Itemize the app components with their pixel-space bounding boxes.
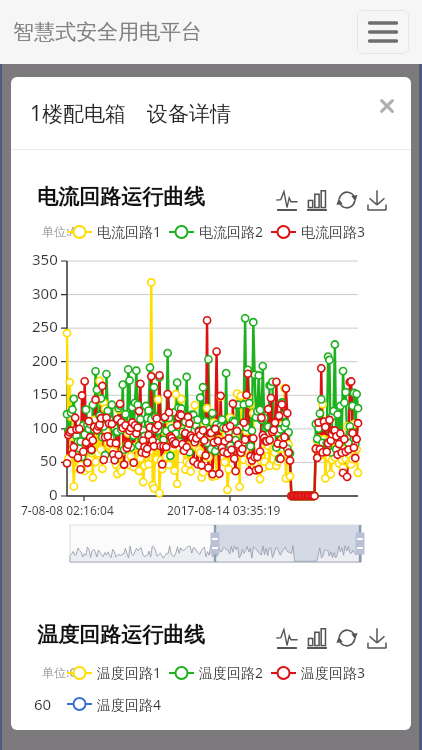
button[interactable]: Save as image — [366, 189, 388, 211]
staticText: 350 — [32, 249, 58, 267]
button[interactable]: Restore — [336, 627, 358, 649]
staticText: 温度回路2 — [199, 663, 264, 682]
staticText: 2017-08-14 03:35:19 — [167, 502, 281, 518]
staticText: 1楼配电箱 设备详情 — [30, 99, 232, 128]
staticText: 60 — [34, 694, 52, 712]
button[interactable]: 温度回路3 — [271, 663, 366, 682]
button[interactable]: Switch bar chart — [306, 189, 328, 211]
staticText: 200 — [32, 350, 58, 368]
staticText: 温度回路4 — [97, 695, 162, 712]
button[interactable]: Save as image — [366, 627, 388, 649]
staticText: 单位:A — [42, 223, 77, 239]
staticText: 电流回路运行曲线 — [37, 184, 205, 210]
button[interactable]: Restore — [336, 189, 358, 211]
button[interactable]: 温度回路4 — [67, 694, 162, 712]
staticText: 50 — [40, 450, 58, 468]
staticText: 温度回路1 — [97, 663, 162, 682]
button[interactable]: Menu — [357, 10, 409, 54]
staticText: 电流回路2 — [199, 222, 264, 241]
staticText: 电流回路3 — [301, 222, 366, 241]
staticText: 温度回路3 — [301, 663, 366, 682]
staticText: 300 — [32, 283, 58, 301]
button[interactable]: Switch line chart — [276, 189, 298, 211]
staticText: 7-08-08 02:16:04 — [21, 502, 114, 518]
button[interactable]: 温度回路运行曲线 — [37, 621, 205, 649]
staticText: 100 — [32, 417, 58, 435]
button[interactable]: Switch line chart — [276, 627, 298, 649]
staticText: 智慧式安全用电平台 — [13, 19, 202, 45]
staticText: 温度回路运行曲线 — [37, 622, 205, 648]
button[interactable]: 温度回路2 — [169, 663, 264, 682]
button[interactable]: 电流回路2 — [169, 222, 264, 241]
button[interactable]: Close — [375, 94, 399, 118]
button[interactable]: Switch bar chart — [306, 627, 328, 649]
staticText: 150 — [32, 383, 58, 401]
staticText: 电流回路1 — [97, 222, 162, 241]
staticText: 单位:C — [42, 664, 77, 680]
staticText: 250 — [32, 316, 58, 334]
button[interactable]: 电流回路1 — [67, 222, 162, 241]
button[interactable]: 电流回路3 — [271, 222, 366, 241]
button[interactable]: 温度回路1 — [67, 663, 162, 682]
button[interactable]: 1楼配电箱 设备详情 — [11, 77, 411, 149]
button[interactable]: 电流回路运行曲线 — [37, 183, 205, 211]
staticText: 0 — [49, 484, 58, 502]
